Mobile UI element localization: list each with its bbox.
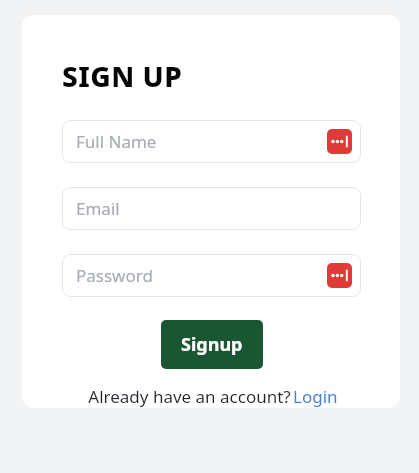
staticText: Email [76,197,352,220]
button[interactable]: Autofill password [327,129,352,154]
staticText: Login [293,385,338,408]
button[interactable]: Login [293,385,338,408]
button[interactable]: Signup [161,320,263,369]
button[interactable]: Full Name [62,120,361,163]
button[interactable]: Email [62,187,361,230]
button[interactable]: Autofill password [327,263,352,288]
button[interactable]: Password [62,254,361,297]
staticText: Full Name [76,130,327,153]
staticText: SIGN UP [62,57,183,95]
staticText: Signup [181,332,243,357]
staticText: Password [76,264,327,287]
staticText: Already have an account? [86,385,293,408]
